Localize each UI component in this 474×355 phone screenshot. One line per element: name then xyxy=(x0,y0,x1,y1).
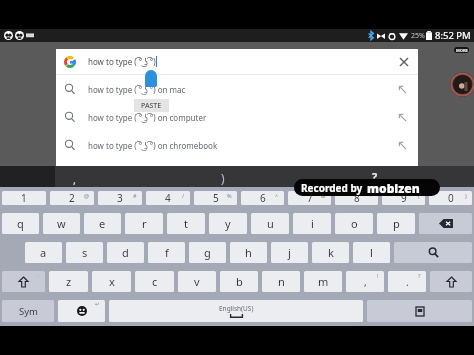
button[interactable]: b xyxy=(220,271,258,292)
button[interactable]: e xyxy=(84,213,121,234)
button[interactable]: g xyxy=(189,242,226,263)
staticText: MORE xyxy=(456,48,468,53)
button[interactable]: Clear query xyxy=(396,54,411,69)
staticText: e xyxy=(99,216,106,231)
button[interactable]: MORE xyxy=(454,47,469,53)
button[interactable]: o xyxy=(335,213,373,234)
button[interactable]: 6 xyxy=(241,191,284,205)
staticText: @ xyxy=(84,192,89,199)
staticText: z xyxy=(66,274,72,289)
staticText: b xyxy=(236,274,243,289)
staticText: ) xyxy=(221,170,225,186)
button[interactable]: v xyxy=(178,271,216,292)
staticText: l xyxy=(370,245,373,260)
staticText: q xyxy=(17,216,24,231)
button[interactable]: English(US) xyxy=(109,300,363,322)
staticText: 0 xyxy=(448,191,454,205)
button[interactable]: y xyxy=(209,213,247,234)
staticText: s xyxy=(82,245,88,260)
button[interactable]: ↵ xyxy=(58,300,105,322)
staticText: how to type ( ͡° ͜ʖ ͡°) xyxy=(88,56,156,67)
staticText: t xyxy=(184,216,188,231)
button[interactable]: c xyxy=(135,271,174,292)
staticText: y xyxy=(225,216,231,231)
button[interactable]: i xyxy=(293,213,331,234)
staticText: · xyxy=(38,272,40,279)
button[interactable]: 3 xyxy=(98,191,142,205)
staticText: i xyxy=(311,216,314,231)
button[interactable]: r xyxy=(125,213,163,234)
button[interactable]: Hide keyboard xyxy=(367,300,472,322)
staticText: , xyxy=(364,275,367,289)
button[interactable]: 1 xyxy=(2,191,46,205)
button[interactable]: l xyxy=(353,242,390,263)
staticText: 4 xyxy=(165,191,171,205)
button[interactable]: Search xyxy=(394,242,472,263)
button[interactable]: Shift xyxy=(430,271,472,292)
button[interactable]: how to type ( ͡° ͜ʖ ͡°) xyxy=(56,49,418,74)
staticText: u xyxy=(267,216,274,231)
button[interactable]: p xyxy=(377,213,415,234)
staticText: w xyxy=(57,216,66,231)
button[interactable]: how to type ( ͡° ͜ʖ ͡°) on mac xyxy=(56,75,418,103)
staticText: o xyxy=(351,216,358,231)
button[interactable]: , xyxy=(346,271,384,292)
button[interactable]: Sym xyxy=(2,300,54,322)
staticText: Recorded by xyxy=(301,181,363,195)
staticText: j xyxy=(288,245,291,260)
button[interactable]: Channel avatar xyxy=(450,72,474,97)
button[interactable]: u xyxy=(251,213,289,234)
button[interactable]: m xyxy=(304,271,342,292)
button[interactable]: · xyxy=(2,271,45,292)
button[interactable]: j xyxy=(271,242,308,263)
staticText: n xyxy=(278,274,285,289)
button[interactable]: w xyxy=(43,213,80,234)
staticText: ! xyxy=(377,272,379,279)
button[interactable]: t xyxy=(167,213,205,234)
staticText: ) xyxy=(465,192,467,199)
button[interactable]: h xyxy=(230,242,267,263)
other: Shift xyxy=(19,277,28,287)
staticText: x xyxy=(109,274,115,289)
button[interactable]: 0 xyxy=(429,191,472,205)
staticText: 3 xyxy=(117,191,123,205)
button[interactable]: a xyxy=(25,242,62,263)
button[interactable]: 5 xyxy=(194,191,237,205)
button[interactable]: 4 xyxy=(146,191,190,205)
staticText: & xyxy=(321,192,326,199)
staticText: 6 xyxy=(260,191,266,205)
staticText: h xyxy=(245,245,252,260)
button[interactable]: 2 xyxy=(50,191,94,205)
button[interactable]: f xyxy=(148,242,185,263)
staticText: c xyxy=(152,274,158,289)
button[interactable]: q xyxy=(2,213,39,234)
staticText: . xyxy=(406,275,409,289)
button[interactable]: . xyxy=(388,271,426,292)
staticText: 8 xyxy=(354,191,360,205)
staticText: 7 xyxy=(307,191,313,205)
button[interactable]: PASTE xyxy=(134,99,169,112)
button[interactable]: z xyxy=(49,271,88,292)
other: Shift xyxy=(447,277,456,287)
other: Hide keyboard xyxy=(416,307,424,316)
staticText: % xyxy=(227,192,232,199)
other: Search xyxy=(428,247,439,258)
button[interactable]: how to type ( ͡° ͜ʖ ͡°) on chromebook xyxy=(56,131,418,159)
staticText: r xyxy=(142,216,147,231)
staticText: m xyxy=(318,274,329,289)
staticText: v xyxy=(194,274,200,289)
staticText: ^ xyxy=(275,192,279,199)
button[interactable]: Backspace xyxy=(419,213,472,234)
other: Emoji xyxy=(77,306,87,316)
button[interactable]: 9 xyxy=(382,191,425,205)
button[interactable]: k xyxy=(312,242,349,263)
button[interactable]: how to type ( ͡° ͜ʖ ͡°) on computer xyxy=(56,103,418,131)
button[interactable]: d xyxy=(107,242,144,263)
button[interactable]: 8 xyxy=(335,191,378,205)
button[interactable]: 7 xyxy=(288,191,331,205)
staticText: 1 xyxy=(21,191,27,205)
staticText: k xyxy=(328,245,334,260)
button[interactable]: n xyxy=(262,271,300,292)
button[interactable]: x xyxy=(92,271,131,292)
button[interactable]: s xyxy=(66,242,103,263)
